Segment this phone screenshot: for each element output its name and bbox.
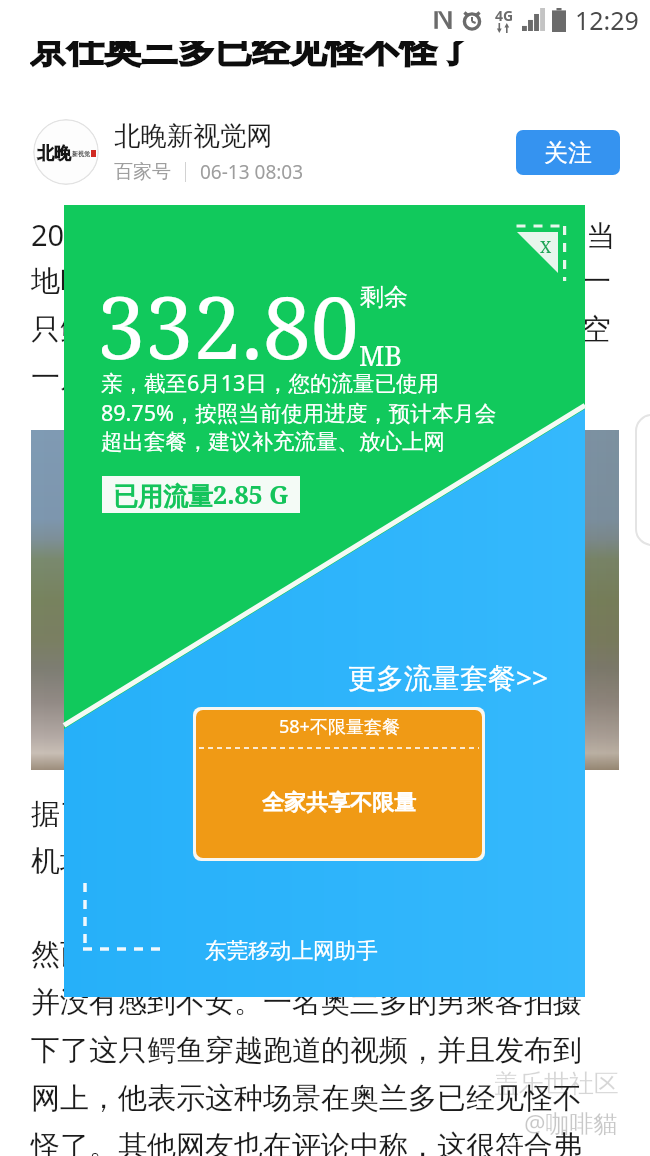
staticText: 89.75%，按照当前使用进度，预计本月会 <box>101 398 497 427</box>
staticText: 亲，截至6月13日，您的流量已使用 <box>101 368 439 397</box>
staticText: 只鳄鱼，它不慌不忙地穿过跑道，让人无奈空 <box>31 311 611 348</box>
staticText: 东莞移动上网助手 <box>205 937 378 964</box>
button[interactable]: 关注 <box>516 130 620 175</box>
staticText: 北晚 <box>37 143 71 164</box>
staticText: 百家号 <box>114 160 171 184</box>
button[interactable]: Close advertisement <box>512 221 568 291</box>
staticText: X <box>540 235 552 258</box>
staticText: 并没有感到不安。一名奥兰多的男乘客拍摄 <box>31 984 582 1021</box>
staticText: 网上，他表示这种场景在奥兰多已经见怪不 <box>31 1080 582 1117</box>
staticText: 20日，据外媒报道，美国奥兰多国际机场，当 <box>31 215 616 255</box>
staticText: 12:29 <box>575 3 639 37</box>
staticText: 已用流量 <box>113 481 213 512</box>
button[interactable]: 更多流量套餐>> <box>344 654 553 700</box>
staticText: 58+不限量套餐 <box>279 714 400 739</box>
staticText: 机场的一条跑道 <box>31 843 234 880</box>
staticText: 怪了。其他网友也在评论中称，这很符合弗 <box>31 1128 582 1156</box>
staticText: 据了解，这只鳄鱼当时正在穿越奥兰多国际 <box>31 796 582 833</box>
staticText: 盖乐世社区 <box>494 1068 619 1099</box>
staticText: 2.85 G <box>213 477 289 511</box>
staticText: 剩余 <box>360 282 408 312</box>
button[interactable]: 58+不限量套餐 <box>196 710 482 858</box>
button[interactable]: 北晚 <box>33 119 99 185</box>
staticText: 4G <box>495 6 514 25</box>
staticText: 一片混乱的场面持续了大约二十分钟才结束 <box>31 359 582 396</box>
staticText: 332.80 <box>97 267 359 384</box>
staticText: 超出套餐，建议补充流量、放心上网 <box>101 428 445 455</box>
staticText: 更多流量套餐>> <box>348 658 549 696</box>
staticText: 京仕奥三多已经见怪不怪了 <box>30 41 474 70</box>
staticText: 然而机场的工作人员对这种景象似乎 <box>31 936 495 973</box>
staticText: 06-13 08:03 <box>200 159 304 185</box>
staticText: 全家共享不限量 <box>262 789 416 817</box>
staticText: 下了这只鳄鱼穿越跑道的视频，并且发布到 <box>31 1032 582 1069</box>
staticText: @咖啡貓 <box>524 1106 618 1139</box>
staticText: MB <box>359 337 402 374</box>
staticText: 关注 <box>544 138 592 168</box>
staticText: 北晚新视觉网 <box>114 119 273 152</box>
staticText: 新视觉 <box>72 150 90 158</box>
staticText: 地时间一早工作人员在跑道上发现了罕见的一 <box>31 263 611 300</box>
